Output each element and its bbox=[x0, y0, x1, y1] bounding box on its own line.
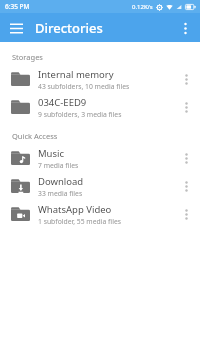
button[interactable]: Internal memory bbox=[0, 65, 200, 93]
staticText: 7 media files bbox=[38, 161, 79, 170]
staticText: Internal memory bbox=[38, 68, 114, 81]
button[interactable]: More options for Internal memory bbox=[176, 69, 196, 89]
staticText: 1 subfolder, 55 media files bbox=[38, 217, 121, 226]
button[interactable]: More options for 034C-EED9 bbox=[176, 97, 196, 117]
button[interactable]: More options bbox=[174, 17, 196, 39]
staticText: Download bbox=[38, 175, 84, 188]
staticText: 33 media files bbox=[38, 189, 83, 198]
staticText: Storages bbox=[12, 52, 43, 62]
button[interactable]: More options for Music bbox=[176, 148, 196, 168]
staticText: 6:35 PM bbox=[5, 2, 30, 11]
staticText: 43 subfolders, 10 media files bbox=[38, 82, 130, 91]
button[interactable]: More options for WhatsApp Video bbox=[176, 204, 196, 224]
button[interactable]: Open navigation drawer bbox=[5, 17, 27, 39]
staticText: 034C-EED9 bbox=[38, 96, 87, 109]
button[interactable]: 034C-EED9 bbox=[0, 93, 200, 121]
staticText: WhatsApp Video bbox=[38, 203, 112, 216]
button[interactable]: Music bbox=[0, 144, 200, 172]
staticText: 0.12K/s bbox=[132, 3, 153, 11]
staticText: Directories bbox=[35, 19, 103, 37]
button[interactable]: More options for Download bbox=[176, 176, 196, 196]
staticText: Music bbox=[38, 147, 65, 160]
staticText: Quick Access bbox=[12, 131, 58, 141]
staticText: 9 subfolders, 3 media files bbox=[38, 110, 122, 119]
button[interactable]: WhatsApp Video bbox=[0, 200, 200, 228]
button[interactable]: Download bbox=[0, 172, 200, 200]
